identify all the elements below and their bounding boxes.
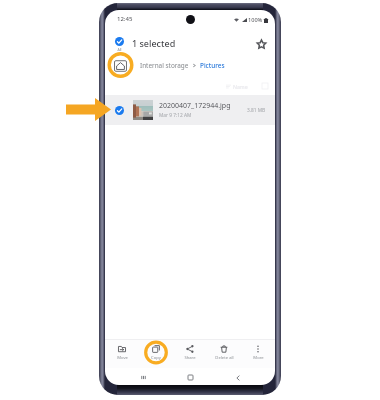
staticText: 3.81 MB	[247, 107, 266, 114]
staticText: Move	[117, 355, 128, 361]
staticText: All	[117, 47, 122, 51]
button[interactable]: 20200407_172944.jpg	[115, 95, 266, 125]
button[interactable]: Delete all	[207, 339, 241, 368]
button[interactable]: Copy	[139, 339, 173, 368]
staticText: 12:45	[117, 15, 133, 23]
button[interactable]: Recents	[119, 370, 167, 385]
staticText: 100%	[248, 16, 263, 24]
button[interactable]: More	[241, 339, 275, 368]
button[interactable]: Add to favorites	[254, 37, 269, 52]
button[interactable]: Name	[226, 83, 248, 90]
staticText: Mar 9 7:12 AM	[159, 112, 192, 119]
button[interactable]: View as grid	[262, 83, 268, 89]
staticText: Copy	[151, 355, 161, 361]
button[interactable]: Share	[173, 339, 207, 368]
button[interactable]: Move	[105, 339, 139, 368]
button[interactable]: Back	[214, 370, 261, 385]
button[interactable]: Home	[167, 370, 214, 385]
button[interactable]: Internal storage home	[114, 59, 127, 72]
staticText: Name	[233, 83, 248, 90]
button[interactable]: Select all	[112, 34, 126, 51]
staticText: 20200407_172944.jpg	[159, 101, 231, 111]
button[interactable]: Internal storage	[140, 61, 189, 70]
staticText: 1 selected	[132, 37, 176, 49]
staticText: Delete all	[215, 355, 234, 361]
staticText: Share	[184, 355, 196, 361]
button[interactable]: Pictures	[200, 61, 225, 70]
staticText: More	[253, 355, 264, 361]
